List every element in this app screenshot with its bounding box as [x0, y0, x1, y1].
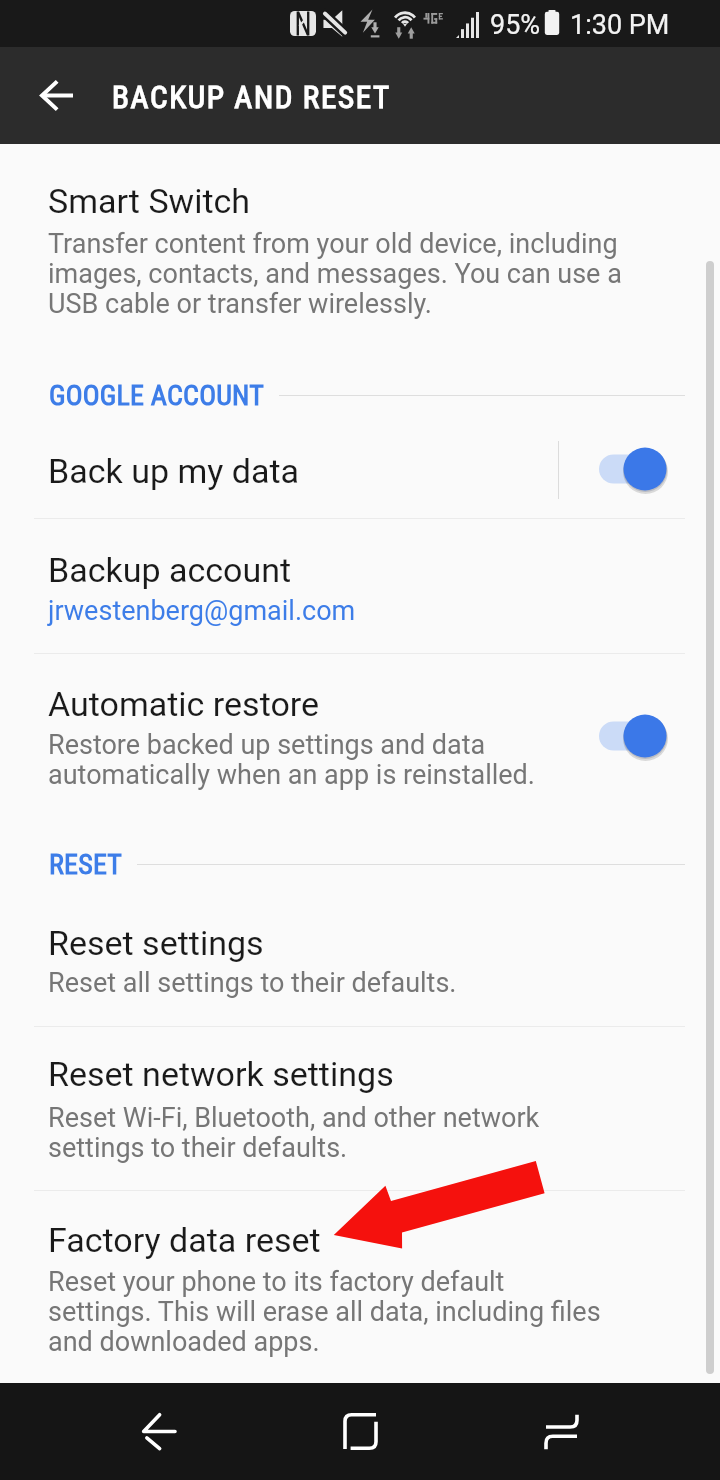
staticText: Transfer content from your old device, i…	[48, 228, 622, 319]
staticText: 95%	[490, 9, 541, 41]
staticText: Reset settings	[48, 923, 264, 963]
button[interactable]: Automatic restore	[0, 656, 720, 820]
staticText: Reset all settings to their defaults.	[48, 967, 457, 999]
staticText: jrwestenberg@gmail.com	[48, 595, 356, 627]
staticText: Smart Switch	[48, 181, 251, 221]
button[interactable]: Back	[57, 1383, 261, 1480]
staticText: Reset Wi-Fi, Bluetooth, and other networ…	[48, 1102, 540, 1163]
staticText: Restore backed up settings and data auto…	[48, 729, 535, 790]
staticText: Backup account	[48, 550, 292, 590]
button[interactable]: Reset network settings	[0, 1027, 720, 1190]
button[interactable]: Smart Switch	[0, 146, 720, 360]
button[interactable]: Backup account	[0, 519, 720, 654]
staticText: BACKUP AND RESET	[112, 79, 391, 115]
button[interactable]: Factory data reset	[0, 1191, 720, 1374]
staticText: Automatic restore	[48, 684, 320, 724]
staticText: GOOGLE ACCOUNT	[49, 379, 265, 412]
button[interactable]: Back up my data	[0, 420, 720, 518]
button[interactable]: Home	[261, 1383, 459, 1480]
button[interactable]: Recent apps	[459, 1383, 663, 1480]
button[interactable]: Navigate up	[24, 63, 89, 128]
staticText: RESET	[49, 848, 123, 881]
staticText: Reset network settings	[48, 1054, 394, 1094]
staticText: 1:30 PM	[570, 9, 670, 41]
staticText: Back up my data	[48, 451, 300, 491]
staticText: Factory data reset	[48, 1220, 321, 1260]
button[interactable]: Reset settings	[0, 892, 720, 1026]
staticText: Reset your phone to its factory default …	[48, 1266, 601, 1357]
